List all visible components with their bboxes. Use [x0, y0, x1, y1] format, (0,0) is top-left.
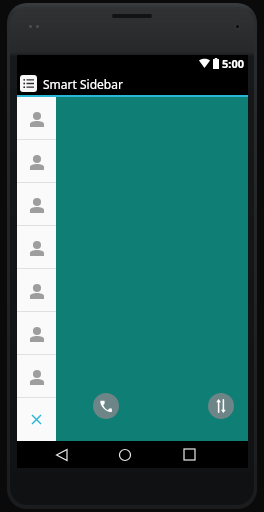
staticText: 5:00 [222, 56, 244, 71]
button[interactable]: Call [93, 393, 119, 419]
button[interactable]: Open sidebar menu [17, 72, 248, 95]
button[interactable]: Recent apps [174, 441, 204, 468]
button[interactable]: Contact shortcut [17, 355, 56, 398]
button[interactable]: Contact shortcut [17, 269, 56, 312]
other: Open sidebar menu [20, 75, 37, 92]
button[interactable]: Contact shortcut [17, 140, 56, 183]
button[interactable]: Home [110, 441, 140, 468]
button[interactable]: Contact shortcut [17, 183, 56, 226]
button[interactable]: Close sidebar [17, 398, 56, 441]
button[interactable]: Transfer data [208, 393, 234, 419]
button[interactable]: Contact shortcut [17, 226, 56, 269]
button[interactable]: Back [46, 441, 76, 468]
button[interactable]: Contact shortcut [17, 97, 56, 140]
staticText: Smart Sidebar [43, 76, 123, 92]
button[interactable]: Contact shortcut [17, 312, 56, 355]
